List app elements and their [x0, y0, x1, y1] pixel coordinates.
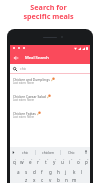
- button[interactable]: y: [50, 157, 58, 167]
- staticText: chic: [20, 66, 27, 71]
- button[interactable]: Chicken Fajitas: [10, 111, 90, 128]
- staticText: l: [81, 169, 83, 175]
- staticText: 4: [39, 158, 41, 161]
- staticText: a: [17, 169, 20, 175]
- button[interactable]: chic: [16, 147, 35, 157]
- button[interactable]: Chicken Caesar Salad: [10, 94, 90, 111]
- staticText: 3: [31, 158, 33, 161]
- button[interactable]: t: [42, 157, 50, 167]
- button[interactable]: Chic: [61, 147, 81, 157]
- staticText: e: [29, 159, 32, 165]
- staticText: x: [33, 177, 36, 183]
- staticText: d: [33, 169, 36, 175]
- button[interactable]: Search: [10, 64, 90, 73]
- staticText: s: [25, 169, 28, 175]
- button[interactable]: Chicken and Dumplings: [10, 77, 90, 94]
- staticText: t: [45, 159, 47, 165]
- staticText: 7: [63, 158, 65, 161]
- button[interactable]: o: [74, 157, 82, 167]
- staticText: 6: [55, 158, 57, 161]
- staticText: chic: [22, 150, 29, 155]
- button[interactable]: h: [54, 167, 62, 177]
- button[interactable]: d: [30, 167, 38, 177]
- button[interactable]: b: [54, 177, 62, 183]
- staticText: m: [72, 177, 77, 183]
- staticText: Chic: [68, 150, 75, 155]
- staticText: Chicken Fajitas: [13, 111, 36, 115]
- staticText: Chicken and Dumplings: [13, 77, 50, 81]
- staticText: Search for specific meals: [0, 2, 100, 21]
- button[interactable]: More suggestions: [10, 147, 16, 157]
- button[interactable]: c: [38, 177, 46, 183]
- staticText: j: [65, 169, 67, 175]
- staticText: q: [13, 159, 16, 165]
- staticText: o: [77, 159, 80, 165]
- button[interactable]: j: [62, 167, 70, 177]
- staticText: i: [69, 159, 71, 165]
- button[interactable]: l: [78, 167, 86, 177]
- button[interactable]: w: [18, 157, 26, 167]
- button[interactable]: e: [26, 157, 34, 167]
- button[interactable]: q: [10, 157, 18, 167]
- staticText: y: [53, 159, 56, 165]
- button[interactable]: x: [30, 177, 38, 183]
- button[interactable]: u: [58, 157, 66, 167]
- staticText: 2: [23, 158, 25, 161]
- staticText: Meal Search: [25, 55, 49, 61]
- button[interactable]: k: [70, 167, 78, 177]
- staticText: v: [49, 177, 52, 183]
- other: Search: [13, 67, 17, 71]
- button[interactable]: n: [62, 177, 70, 183]
- staticText: b: [57, 177, 60, 183]
- button[interactable]: r: [34, 157, 42, 167]
- staticText: z: [25, 177, 28, 183]
- staticText: 1: [15, 158, 17, 161]
- button[interactable]: Voice input: [81, 147, 90, 157]
- staticText: w: [20, 159, 24, 165]
- button[interactable]: f: [38, 167, 46, 177]
- button[interactable]: m: [70, 177, 78, 183]
- button[interactable]: s: [22, 167, 30, 177]
- button[interactable]: a: [14, 167, 22, 177]
- button[interactable]: g: [46, 167, 54, 177]
- button[interactable]: i: [66, 157, 74, 167]
- staticText: chicken: [42, 150, 55, 155]
- button[interactable]: Back: [10, 51, 21, 64]
- staticText: 9: [79, 158, 81, 161]
- staticText: n: [65, 177, 68, 183]
- staticText: 0: [87, 158, 89, 161]
- staticText: k: [73, 169, 76, 175]
- staticText: 8: [71, 158, 73, 161]
- staticText: f: [41, 169, 43, 175]
- button[interactable]: p: [82, 157, 90, 167]
- staticText: p: [85, 159, 88, 165]
- button[interactable]: chicken: [36, 147, 60, 157]
- staticText: r: [37, 159, 39, 165]
- staticText: g: [49, 169, 52, 175]
- staticText: Last eaten: Never: [13, 115, 35, 119]
- button[interactable]: z: [22, 177, 30, 183]
- staticText: 5: [47, 158, 49, 161]
- staticText: u: [61, 159, 64, 165]
- staticText: Last eaten: Never: [13, 81, 35, 85]
- staticText: c: [41, 177, 44, 183]
- staticText: Chicken Caesar Salad: [13, 94, 46, 98]
- button[interactable]: v: [46, 177, 54, 183]
- staticText: Last eaten: Never: [13, 98, 35, 102]
- staticText: h: [57, 169, 60, 175]
